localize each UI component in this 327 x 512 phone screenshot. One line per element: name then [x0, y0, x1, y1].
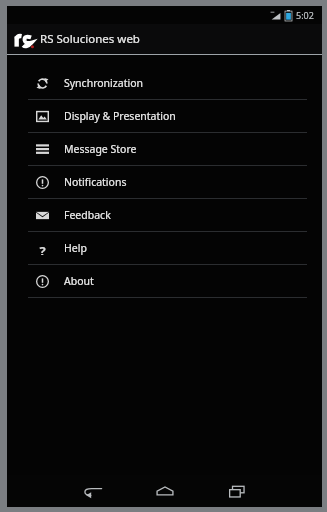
staticText: Display & Presentation	[64, 109, 176, 123]
button[interactable]: Synchronization	[7, 67, 322, 99]
button[interactable]: Recent apps	[201, 475, 273, 507]
button[interactable]: Help	[7, 232, 322, 264]
staticText: 5:02	[296, 9, 314, 21]
staticText: RS Soluciones web	[40, 31, 140, 47]
staticText: Message Store	[64, 142, 137, 156]
other: Information	[36, 176, 49, 189]
other: Message Store	[36, 143, 49, 156]
other: Feedback	[36, 209, 49, 222]
staticText: Help	[64, 241, 87, 255]
button[interactable]: Feedback	[7, 199, 322, 231]
staticText: Synchronization	[64, 76, 143, 90]
other: Synchronization	[36, 77, 49, 90]
button[interactable]: Message Store	[7, 133, 322, 165]
button[interactable]: Back	[57, 475, 129, 507]
other: Help	[36, 242, 49, 255]
button[interactable]: Display and Presentation	[7, 100, 322, 132]
button[interactable]: Information	[7, 265, 322, 297]
staticText: Notifications	[64, 175, 127, 189]
button[interactable]: Information	[7, 166, 322, 198]
staticText: Feedback	[64, 208, 111, 222]
other: Information	[36, 275, 49, 288]
other: Display and Presentation	[36, 110, 49, 123]
staticText: About	[64, 274, 94, 288]
staticText: ?	[39, 242, 46, 255]
button[interactable]: Home	[129, 475, 201, 507]
